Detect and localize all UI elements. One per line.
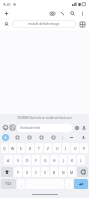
button[interactable]: Sticker [38, 134, 45, 141]
staticText: T [38, 146, 40, 151]
button[interactable]: Search [69, 10, 76, 17]
button[interactable]: Y [14, 167, 22, 177]
staticText: R [29, 146, 32, 151]
staticText: D [26, 158, 29, 163]
button[interactable]: Textnachricht [17, 124, 72, 132]
staticText: U [56, 146, 59, 151]
button[interactable]: , [17, 179, 25, 189]
button[interactable]: Voice input [80, 124, 87, 131]
button[interactable]: Add [3, 10, 10, 17]
button[interactable]: Clipboard [14, 134, 21, 141]
button[interactable]: I [62, 143, 70, 153]
button[interactable]: J [59, 155, 67, 165]
button[interactable]: Camera [49, 10, 56, 17]
staticText: ?123 [5, 182, 12, 186]
staticText: I [65, 146, 67, 151]
button[interactable]: D [23, 155, 31, 165]
staticText: Textnachricht [20, 126, 41, 130]
button[interactable]: Settings [73, 124, 80, 131]
staticText: Z [47, 146, 49, 151]
staticText: C [35, 170, 38, 175]
staticText: H [53, 158, 56, 163]
button[interactable]: A [4, 155, 13, 165]
button[interactable]: P [80, 143, 88, 153]
button[interactable]: R [26, 143, 34, 153]
button[interactable]: H [50, 155, 58, 165]
button[interactable]: T [35, 143, 43, 153]
button[interactable]: Keyboard settings [80, 134, 87, 141]
button[interactable]: Attach [9, 124, 16, 131]
button[interactable]: L [77, 155, 85, 165]
button[interactable]: ?123 [1, 179, 16, 189]
button[interactable]: C [32, 167, 40, 177]
staticText: . [69, 182, 70, 187]
button[interactable]: More options [79, 10, 86, 17]
button[interactable]: X [23, 167, 31, 177]
button[interactable]: Assistant [2, 134, 9, 141]
button[interactable]: K [68, 155, 76, 165]
button[interactable]: N [59, 167, 67, 177]
staticText: S [17, 158, 19, 163]
staticText: W [11, 146, 15, 151]
button[interactable]: Backspace [77, 167, 88, 177]
button[interactable]: V [41, 167, 49, 177]
button[interactable]: Send [74, 179, 88, 189]
button[interactable]: O [71, 143, 79, 153]
staticText: Q [3, 146, 6, 151]
button[interactable]: Tabs [78, 20, 86, 28]
staticText: , [21, 182, 22, 187]
staticText: B [53, 170, 56, 175]
staticText: V [44, 170, 47, 175]
button[interactable]: W [9, 143, 16, 153]
button[interactable]: F [32, 155, 40, 165]
button[interactable]: B [50, 167, 58, 177]
staticText: N [62, 170, 65, 175]
button[interactable]: Q [1, 143, 8, 153]
button[interactable]: Shift [1, 167, 13, 177]
staticText: M [70, 170, 74, 175]
staticText: K [71, 158, 74, 163]
button[interactable]: M [68, 167, 76, 177]
button[interactable]: Account [3, 21, 10, 28]
staticText: O [74, 146, 77, 151]
staticText: G [44, 158, 47, 163]
staticText: mobile.de/fahrzeuge [28, 22, 60, 26]
button[interactable]: Z [44, 143, 52, 153]
staticText: E [20, 146, 22, 151]
button[interactable]: E [17, 143, 25, 153]
button[interactable]: Emoji [2, 124, 9, 131]
staticText: L [80, 158, 82, 163]
button[interactable]: GIF [26, 134, 33, 141]
staticText: GEHEIME Nachricht an mobile.de/check.com [17, 116, 72, 120]
button[interactable]: S [14, 155, 22, 165]
staticText: P [83, 146, 86, 151]
button[interactable]: G [41, 155, 49, 165]
button[interactable]: Theme [68, 134, 75, 141]
button[interactable]: Call [59, 10, 66, 17]
staticText: F [35, 158, 37, 163]
staticText: A [7, 158, 10, 163]
button[interactable]: mobile.de/fahrzeuge [12, 20, 76, 28]
button[interactable]: U [53, 143, 61, 153]
staticText: X [26, 170, 28, 175]
staticText: Y [17, 170, 19, 175]
button[interactable]: Emoji panel [50, 134, 57, 141]
button[interactable]: . [65, 179, 73, 189]
staticText: 9:41 [3, 2, 11, 7]
staticText: J [63, 158, 64, 163]
